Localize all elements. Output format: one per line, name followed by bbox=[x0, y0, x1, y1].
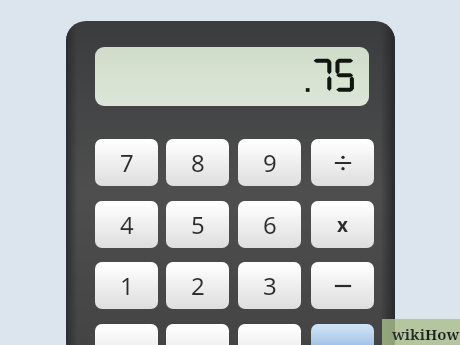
staticText: 3 bbox=[263, 269, 277, 302]
staticText: 1 bbox=[120, 269, 134, 302]
button[interactable]: 3 bbox=[238, 262, 301, 309]
button[interactable]: 8 bbox=[166, 139, 229, 186]
staticText: How bbox=[425, 324, 460, 344]
button[interactable]: Zero bbox=[95, 324, 158, 345]
button[interactable]: 4 bbox=[95, 201, 158, 248]
staticText: wiki bbox=[392, 324, 425, 344]
button[interactable]: Clear bbox=[238, 324, 301, 345]
staticText: 8 bbox=[191, 146, 205, 179]
staticText: 2 bbox=[191, 269, 205, 302]
staticText: 7 bbox=[120, 146, 134, 179]
staticText: 6 bbox=[263, 208, 277, 241]
staticText: x bbox=[337, 212, 348, 238]
button[interactable]: 7 bbox=[95, 139, 158, 186]
staticText: 9 bbox=[263, 146, 277, 179]
staticText: 5 bbox=[191, 208, 205, 241]
button[interactable]: 1 bbox=[95, 262, 158, 309]
button[interactable]: Decimal point bbox=[166, 324, 229, 345]
button[interactable]: 2 bbox=[166, 262, 229, 309]
button[interactable]: 9 bbox=[238, 139, 301, 186]
button[interactable]: Divide bbox=[311, 139, 374, 186]
button[interactable]: Equals bbox=[311, 324, 374, 345]
button[interactable]: 5 bbox=[166, 201, 229, 248]
staticText: 4 bbox=[120, 208, 134, 241]
button[interactable]: 6 bbox=[238, 201, 301, 248]
button[interactable]: Multiply bbox=[311, 201, 374, 248]
button[interactable]: Subtract bbox=[311, 262, 374, 309]
